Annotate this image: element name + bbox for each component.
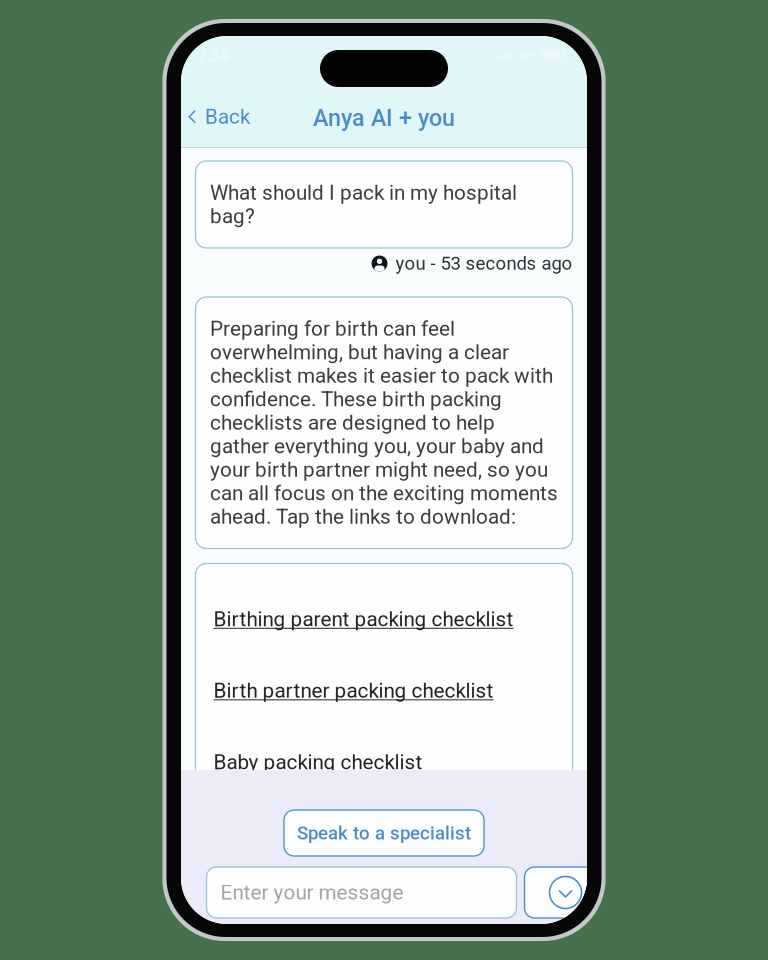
button[interactable]: Speak to a specialist xyxy=(284,810,484,856)
button[interactable]: Baby packing checklist xyxy=(195,726,572,798)
button[interactable]: Collapse conversation xyxy=(524,867,606,918)
staticText: Back xyxy=(205,105,250,128)
staticText: Preparing for birth can feel overwhelmin… xyxy=(210,317,558,528)
staticText: Speak to a specialist xyxy=(297,822,471,844)
staticText: 7:59 xyxy=(198,46,229,65)
staticText: Enter your message xyxy=(220,881,403,904)
button[interactable]: Back xyxy=(181,96,257,137)
staticText: you - 53 seconds ago xyxy=(395,253,572,274)
button[interactable]: Birthing parent packing checklist xyxy=(195,583,572,655)
staticText: Anya AI + you xyxy=(313,105,455,131)
button[interactable]: Enter your message xyxy=(206,867,516,918)
staticText: Birth partner packing checklist xyxy=(213,679,493,702)
button[interactable]: Birth partner packing checklist xyxy=(195,655,572,726)
staticText: Birthing parent packing checklist xyxy=(213,607,513,631)
staticText: Baby packing checklist xyxy=(213,750,422,774)
staticText: What should I pack in my hospital bag? xyxy=(210,181,517,228)
